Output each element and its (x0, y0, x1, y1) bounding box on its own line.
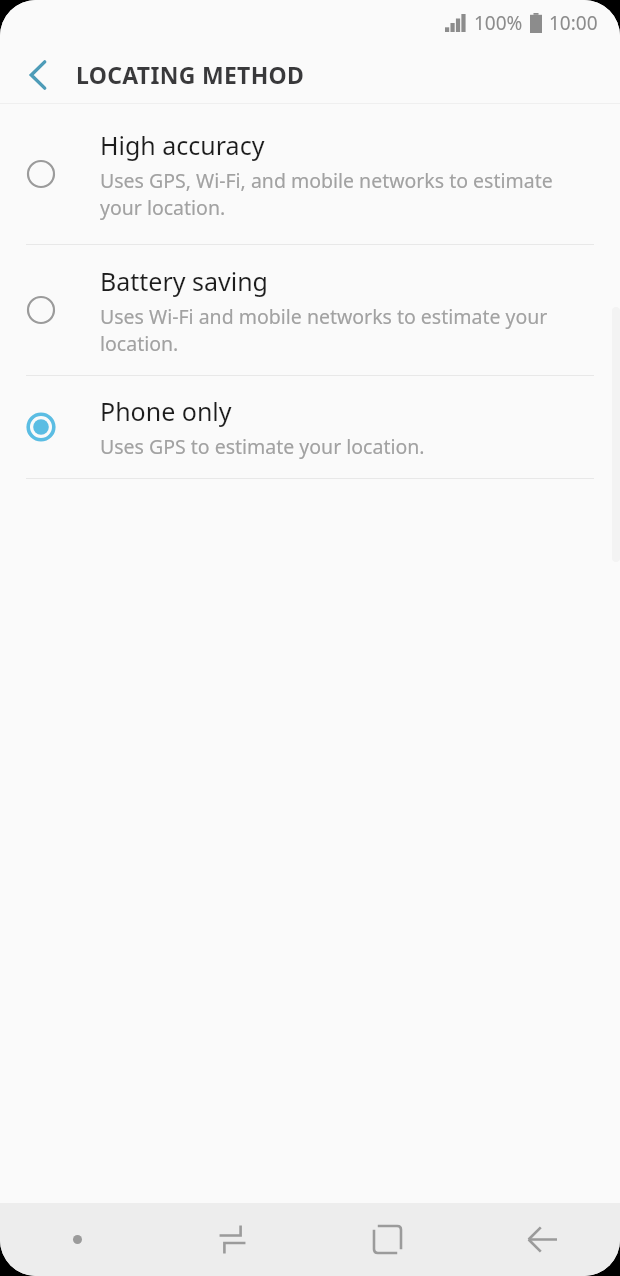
staticText: Battery saving (100, 264, 268, 298)
staticText: Uses GPS to estimate your location. (100, 433, 425, 460)
button[interactable]: Recents (155, 1203, 310, 1276)
button[interactable]: Battery saving (0, 245, 620, 375)
staticText: Phone only (100, 394, 232, 428)
button[interactable]: Back (11, 48, 65, 102)
staticText: Uses GPS, Wi-Fi, and mobile networks to … (100, 167, 590, 221)
staticText: LOCATING METHOD (76, 59, 305, 90)
button[interactable]: High accuracy (0, 104, 620, 244)
button[interactable]: Home (310, 1203, 465, 1276)
button[interactable]: Phone only (0, 376, 620, 478)
staticText: High accuracy (100, 128, 265, 162)
staticText: Uses Wi-Fi and mobile networks to estima… (100, 303, 590, 357)
staticText: 100% (474, 10, 523, 36)
button[interactable]: Back (465, 1203, 620, 1276)
staticText: 10:00 (549, 10, 598, 36)
